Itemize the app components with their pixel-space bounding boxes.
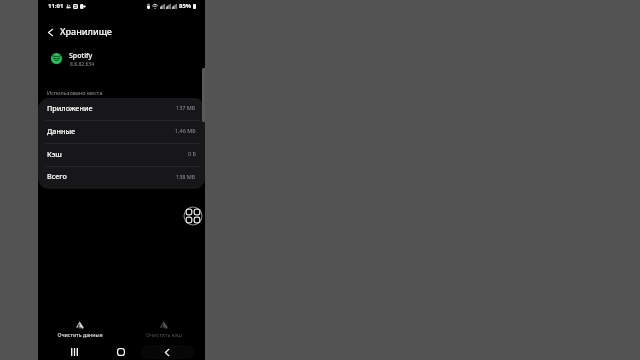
button[interactable]: Back [41, 23, 59, 41]
button[interactable]: Очистить кэш [122, 318, 206, 340]
staticText: Spotify [69, 51, 93, 61]
staticText: Приложение [47, 103, 93, 113]
staticText: Всего [47, 171, 67, 181]
staticText: 85% [179, 2, 192, 10]
staticText: Хранилище [60, 25, 112, 37]
button[interactable]: Приложение [38, 98, 205, 121]
staticText: Использовано места [47, 89, 103, 96]
button[interactable]: Очистить данные [38, 318, 122, 340]
button[interactable]: Spotify [38, 48, 205, 72]
staticText: Данные [47, 126, 76, 136]
staticText: Кэш [47, 149, 62, 159]
staticText: Очистить данные [38, 331, 122, 338]
button[interactable]: Всего [38, 167, 205, 189]
staticText: 11:01 [48, 2, 64, 10]
button[interactable]: Home [109, 344, 133, 360]
button[interactable]: Данные [38, 121, 205, 144]
staticText: 138 МБ [176, 173, 196, 180]
staticText: 1,46 МБ [175, 127, 196, 134]
button[interactable]: Recent apps [62, 344, 86, 360]
staticText: 8.8.82.634 [70, 61, 95, 68]
staticText: 0 Б [188, 150, 196, 157]
button[interactable]: App shortcuts [181, 204, 205, 228]
button[interactable]: Кэш [38, 144, 205, 167]
staticText: 137 МБ [176, 104, 196, 111]
staticText: Очистить кэш [122, 331, 206, 338]
button[interactable]: Back [155, 344, 179, 360]
